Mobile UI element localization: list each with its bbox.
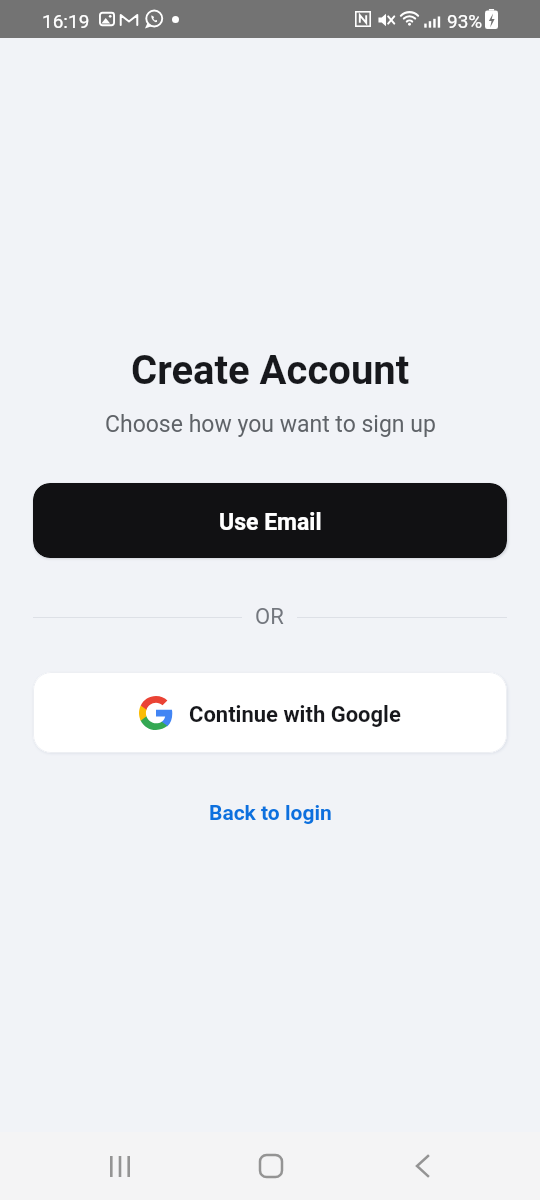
staticText: 93%	[447, 10, 483, 32]
staticText: Choose how you want to sign up	[105, 411, 436, 438]
staticText: Continue with Google	[189, 702, 401, 728]
staticText: Use Email	[219, 509, 322, 536]
button[interactable]: Back	[380, 1135, 464, 1197]
staticText: OR	[255, 604, 284, 630]
button[interactable]: Home	[229, 1135, 313, 1197]
staticText: Back to login	[209, 801, 332, 826]
staticText: Create Account	[131, 347, 410, 394]
staticText: 16:19	[42, 10, 90, 32]
button[interactable]: Recent apps	[78, 1135, 162, 1197]
button[interactable]: Continue with Google	[33, 672, 507, 753]
button[interactable]: Use Email	[33, 483, 507, 558]
button[interactable]: Back to login	[189, 793, 352, 834]
